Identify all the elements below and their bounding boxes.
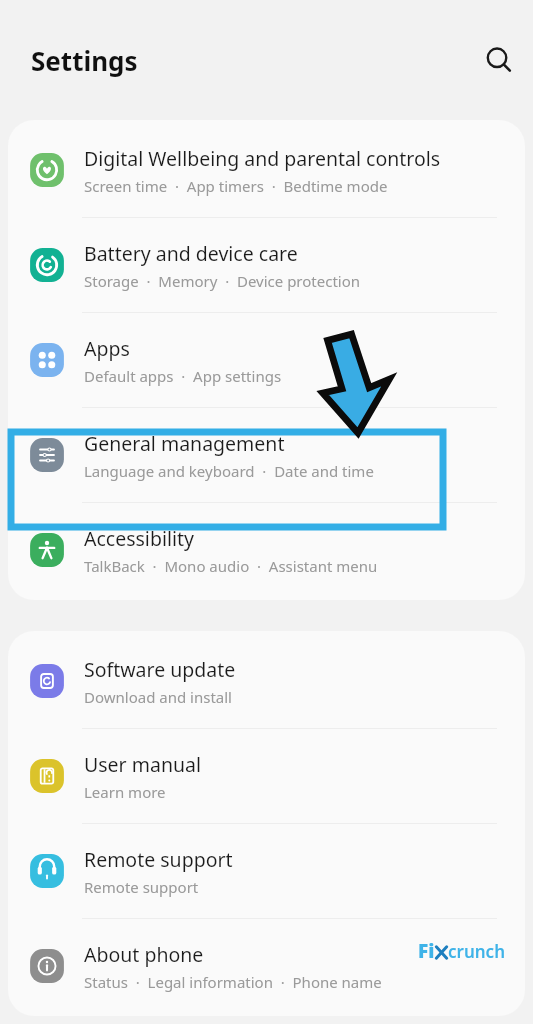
button[interactable]: Battery and device care (8, 218, 525, 312)
staticText: Accessibility (84, 525, 194, 552)
button[interactable]: Software update (8, 634, 525, 728)
staticText: User manual (84, 751, 201, 778)
staticText: Screen time · App timers · Bedtime mode (84, 176, 388, 196)
button[interactable]: Search (475, 36, 523, 84)
staticText: TalkBack · Mono audio · Assistant menu (84, 556, 378, 576)
staticText: General management (84, 430, 285, 457)
staticText: Remote support (84, 877, 199, 897)
staticText: Software update (84, 656, 236, 683)
staticText: Status · Legal information · Phone name (84, 972, 382, 992)
staticText: Learn more (84, 782, 166, 802)
staticText: About phone (84, 941, 204, 968)
staticText: Digital Wellbeing and parental controls (84, 145, 441, 172)
staticText: Download and install (84, 687, 232, 707)
button[interactable]: Remote support (8, 824, 525, 918)
staticText: Remote support (84, 846, 233, 873)
staticText: Default apps · App settings (84, 366, 282, 386)
staticText: Fi (418, 938, 435, 964)
staticText: Battery and device care (84, 240, 298, 267)
staticText: Language and keyboard · Date and time (84, 461, 374, 481)
button[interactable]: Digital Wellbeing and parental controls (8, 123, 525, 217)
staticText: crunch (448, 940, 505, 963)
button[interactable]: General management (8, 408, 525, 502)
button[interactable]: Apps (8, 313, 525, 407)
staticText: Settings (31, 43, 138, 78)
button[interactable]: User manual (8, 729, 525, 823)
button[interactable]: About phone (8, 919, 525, 1013)
staticText: Storage · Memory · Device protection (84, 271, 361, 291)
button[interactable]: Accessibility (8, 503, 525, 597)
staticText: Apps (84, 335, 130, 362)
